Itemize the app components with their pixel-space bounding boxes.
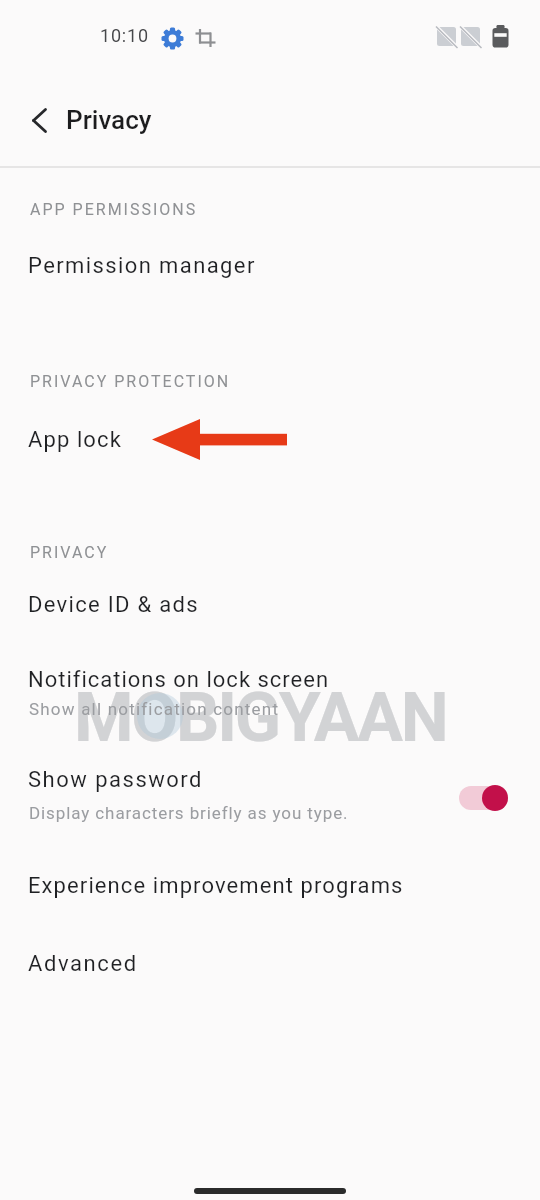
button[interactable]: Advanced [0,936,540,998]
staticText: Display characters briefly as you type. [29,803,349,823]
button[interactable]: Experience improvement programs [0,858,540,920]
staticText: Permission manager [28,253,256,279]
staticText: App lock [28,427,122,453]
button[interactable]: Permission manager [0,238,540,300]
staticText: APP PERMISSIONS [30,200,198,219]
staticText: Advanced [28,951,138,977]
button[interactable]: Notifications on lock screen [0,650,540,734]
staticText: Privacy [66,105,152,135]
staticText: PRIVACY PROTECTION [30,372,231,391]
button[interactable]: Show password [0,752,540,838]
staticText: 10:10 [100,25,149,46]
staticText: Device ID & ads [28,592,199,618]
staticText: Notifications on lock screen [28,667,330,693]
button[interactable] [459,786,508,810]
staticText: MOBIGYAAN [74,678,447,758]
button[interactable] [18,98,62,142]
staticText: Show all notification content [29,699,280,719]
button[interactable]: Device ID & ads [0,576,540,638]
staticText: Show password [28,767,203,793]
staticText: PRIVACY [30,543,109,562]
staticText: Experience improvement programs [28,873,404,899]
button[interactable]: App lock [0,412,540,474]
